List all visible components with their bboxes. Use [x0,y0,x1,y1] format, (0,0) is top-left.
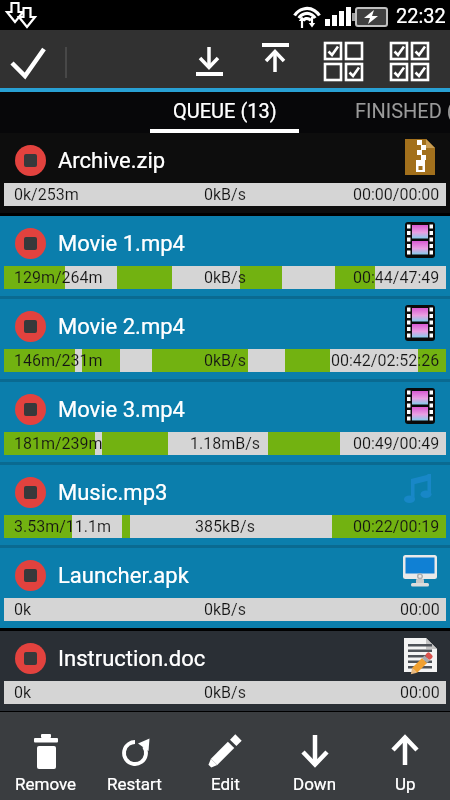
staticText: 00:42/02:52:26 [331,351,440,370]
staticText: 0k [14,683,32,702]
staticText: 146m/231m [14,351,103,370]
button[interactable] [184,32,236,86]
staticText: Up [395,774,416,794]
button[interactable] [270,712,360,800]
button[interactable]: Movie 2.mp4 [0,299,450,379]
staticText: Instruction.doc [58,646,206,672]
staticText: 0k/253m [14,185,79,204]
staticText: 385kB/s [195,517,255,536]
button[interactable] [15,228,46,259]
button[interactable] [15,477,46,508]
staticText: Remove [15,774,77,794]
button[interactable] [90,712,180,800]
button[interactable] [384,32,436,86]
staticText: 0kB/s [204,351,246,370]
staticText: 00:00/00:00 [353,185,440,204]
staticText: 3.53m/11.1m [14,517,112,536]
staticText: 1.18mB/s [190,434,261,453]
button[interactable] [0,712,90,800]
staticText: Restart [107,774,162,794]
staticText: Launcher.apk [58,563,189,589]
staticText: 22:32 [396,4,446,27]
button[interactable] [15,311,46,342]
button[interactable]: QUEUE (13) [150,92,300,129]
button[interactable] [15,643,46,674]
staticText: Movie 2.mp4 [58,314,185,340]
staticText: 00:00 [400,600,440,619]
button[interactable] [250,32,302,86]
button[interactable]: Movie 1.mp4 [0,216,450,296]
staticText: Archive.zip [58,148,166,174]
staticText: Music.mp3 [58,480,168,506]
button[interactable]: FINISHED ( [300,92,450,129]
staticText: 129m/264m [14,268,103,287]
staticText: FINISHED ( [355,99,450,122]
staticText: 00:22/00:19 [353,517,440,536]
staticText: 00:49/00:49 [353,434,440,453]
button[interactable] [0,32,62,86]
staticText: 0k [14,600,32,619]
button[interactable] [360,712,450,800]
staticText: 0kB/s [204,600,246,619]
button[interactable] [15,145,46,176]
staticText: Movie 1.mp4 [58,231,185,257]
button[interactable]: Archive.zip [0,133,450,213]
staticText: 181m/239m [14,434,103,453]
staticText: 0kB/s [204,683,246,702]
button[interactable]: Launcher.apk [0,548,450,628]
staticText: Movie 3.mp4 [58,397,185,423]
staticText: 00:44/47:49 [353,268,440,287]
button[interactable]: Movie 3.mp4 [0,382,450,462]
staticText: 00:00 [400,683,440,702]
button[interactable] [180,712,270,800]
button[interactable]: Instruction.doc [0,631,450,711]
button[interactable] [318,32,370,86]
staticText: Down [293,774,337,794]
staticText: QUEUE (13) [173,99,277,122]
staticText: 0kB/s [204,268,246,287]
button[interactable]: Music.mp3 [0,465,450,545]
staticText: Edit [211,774,240,794]
staticText: 0kB/s [204,185,246,204]
button[interactable] [15,394,46,425]
button[interactable] [15,560,46,591]
